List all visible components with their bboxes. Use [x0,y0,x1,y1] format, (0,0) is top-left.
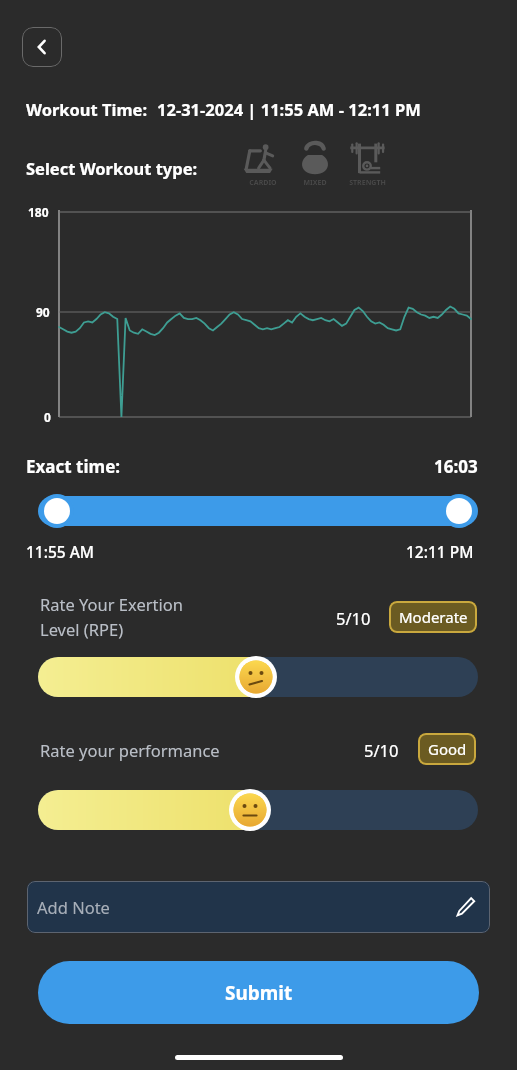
button[interactable]: Time range slider [38,494,478,528]
staticText: 90 [36,304,50,320]
staticText: STRENGTH [349,178,386,188]
staticText: Select Workout type: [26,157,198,179]
staticText: Good [428,739,467,759]
button[interactable]: Add Note [27,881,490,933]
button[interactable]: MIXED [292,140,338,188]
staticText: 11:55 AM [26,541,95,562]
staticText: Exact time: [26,455,121,478]
staticText: Workout Time: [26,98,148,120]
staticText: MIXED [303,178,327,188]
staticText: Add Note [37,896,110,918]
staticText: 12:11 PM [406,541,474,562]
button[interactable]: Performance rating [38,788,478,832]
staticText: 12-31-2024 | 11:55 AM - 12:11 PM [157,98,421,120]
staticText: 180 [28,204,49,220]
staticText: CARDIO [249,178,277,188]
staticText: 0 [44,409,51,425]
button[interactable]: Good [418,733,476,765]
button[interactable]: Back [22,27,62,67]
staticText: 5/10 [364,739,399,761]
button[interactable]: Submit [38,961,479,1024]
button[interactable]: STRENGTH [344,140,390,188]
staticText: Submit [225,980,293,1006]
staticText: 16:03 [434,455,478,478]
staticText: Rate your performance [40,739,220,761]
staticText: Rate Your Exertion Level (RPE) [40,593,183,640]
staticText: Moderate [399,607,468,627]
button[interactable]: Moderate [389,601,477,633]
staticText: 5/10 [336,607,371,629]
button[interactable]: Exertion rating [38,655,478,699]
button[interactable]: CARDIO [240,140,286,188]
